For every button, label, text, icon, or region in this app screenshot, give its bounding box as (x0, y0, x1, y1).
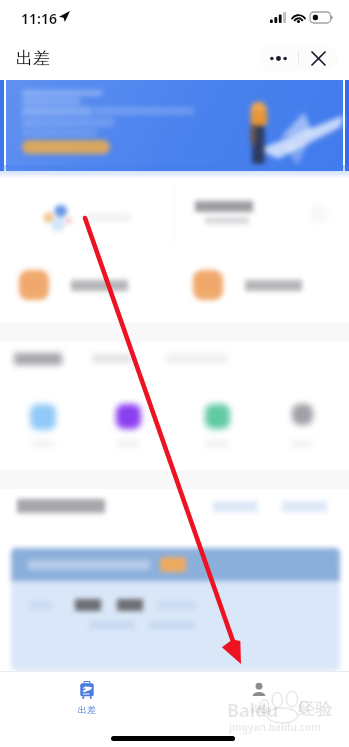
button[interactable] (195, 201, 315, 224)
staticText: 经验 (298, 699, 332, 720)
button[interactable] (98, 404, 158, 447)
other: More options (259, 45, 298, 72)
button[interactable] (92, 354, 132, 363)
button[interactable] (193, 269, 338, 301)
button[interactable] (272, 404, 332, 447)
button[interactable] (187, 404, 247, 447)
staticText: 11:16 (21, 9, 57, 28)
button[interactable] (282, 501, 327, 512)
button[interactable] (11, 548, 340, 671)
staticText: 我的 (250, 703, 268, 714)
button[interactable] (19, 269, 169, 301)
button[interactable] (213, 501, 258, 512)
button[interactable] (41, 197, 171, 237)
button[interactable] (6, 80, 343, 171)
button[interactable]: 我的 (229, 682, 289, 714)
button[interactable] (13, 404, 73, 447)
button[interactable] (14, 353, 62, 365)
button[interactable]: 出差 (57, 681, 117, 715)
staticText: Baidu (227, 698, 279, 723)
staticText: jingyan.baidu.com (229, 720, 321, 734)
button[interactable]: More options (259, 45, 338, 72)
staticText: 出差 (78, 704, 96, 715)
staticText: 出差 (16, 48, 50, 69)
other: Close (299, 45, 338, 72)
